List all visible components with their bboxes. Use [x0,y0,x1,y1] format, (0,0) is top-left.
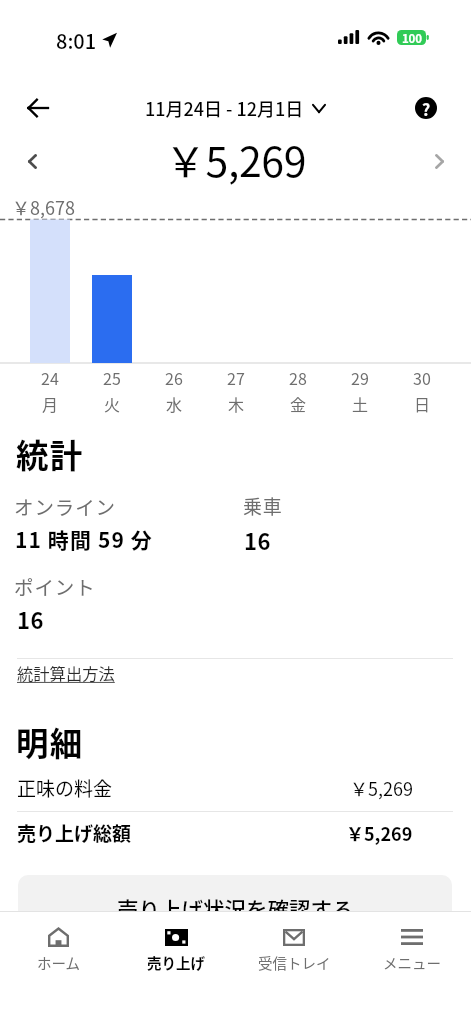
staticText: 統計算出方法 [17,661,115,685]
staticText: 月 [42,392,59,415]
staticText: 金 [290,392,307,415]
staticText: 日 [414,392,431,415]
button[interactable]: Next week [417,139,461,183]
staticText: 27 [227,366,245,389]
staticText: 11月24日 - 12月1日 [145,95,304,121]
staticText: オンライン [14,492,117,520]
button[interactable]: 売り上げ状況を確認する [18,875,452,935]
button[interactable]: 統計算出方法 [17,661,115,685]
staticText: 木 [228,392,245,415]
staticText: ￥5,269 [346,820,413,846]
staticText: 16 [244,524,272,556]
staticText: 受信トレイ [258,952,331,973]
staticText: 火 [104,392,121,415]
staticText: ￥5,269 [350,775,413,801]
button[interactable]: Back [15,86,59,130]
staticText: 水 [166,392,183,415]
staticText: 売り上げ総額 [17,819,132,847]
button[interactable]: Help [404,86,448,130]
staticText: 11 時間 59 分 [15,524,153,554]
staticText: 8:01 [56,26,97,55]
staticText: 100 [402,30,422,45]
staticText: ? [422,97,431,119]
staticText: 明細 [16,718,84,765]
staticText: 28 [289,366,307,389]
staticText: 売り上げ状況を確認する [117,893,354,924]
staticText: 24 [41,366,59,389]
staticText: 統計 [16,430,84,477]
staticText: ポイント [14,572,96,600]
button[interactable]: 受信トレイ [235,912,353,1024]
staticText: 16 [17,603,45,635]
staticText: ￥8,678 [12,194,75,220]
staticText: 正味の料金 [17,774,113,802]
staticText: 土 [352,392,369,415]
staticText: 30 [413,366,431,389]
staticText: 25 [103,366,121,389]
staticText: 売り上げ [147,952,205,973]
staticText: メニュー [383,952,441,973]
staticText: ホーム [37,952,81,973]
staticText: 26 [165,366,183,389]
button[interactable]: Previous week [10,139,54,183]
button[interactable]: 11月24日 - 12月1日 [141,91,330,125]
button[interactable]: ホーム [0,912,117,1024]
staticText: ￥5,269 [165,129,307,188]
button[interactable]: 売り上げ [117,912,235,1024]
staticText: 乗車 [243,492,283,520]
staticText: 29 [351,366,369,389]
button[interactable]: メニュー [353,912,471,1024]
